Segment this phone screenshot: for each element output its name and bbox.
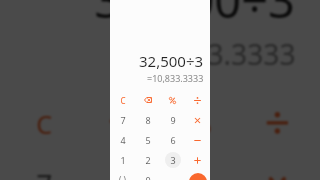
button[interactable]: Percent [160,90,185,110]
staticText: =10,833.3333 [119,34,298,71]
button[interactable]: Backspace [135,90,160,110]
button[interactable]: 3 [160,150,185,170]
staticText: =10,833.3333 [147,72,204,84]
staticText: 0 [145,174,151,180]
button[interactable]: Equals [185,174,210,180]
staticText: C [120,95,126,106]
staticText: 7 [35,165,54,180]
button[interactable]: Equals [189,173,207,180]
button[interactable]: 1 [110,150,135,170]
staticText: 9 [191,165,210,180]
button[interactable]: Divide [185,90,210,110]
button[interactable]: 7 [3,153,82,180]
button[interactable]: Backspace [82,90,160,153]
button[interactable]: Clear [110,90,135,110]
button[interactable]: 2 [135,150,160,170]
button[interactable]: 0 [135,174,160,180]
staticText: 9 [170,114,176,126]
button[interactable]: Multiply [238,153,317,180]
staticText: C [35,106,54,140]
button[interactable]: 9 [160,110,185,130]
button[interactable]: 8 [82,153,160,180]
button[interactable]: Multiply [185,110,210,130]
button[interactable]: 8 [135,110,160,130]
button[interactable]: Percent [160,90,238,153]
staticText: 1 [120,154,126,166]
button[interactable]: Clear [3,90,82,153]
staticText: 3 [170,154,176,166]
button[interactable]: 6 [160,130,185,150]
staticText: 32,500÷3 [94,0,298,30]
staticText: 5 [145,134,151,146]
button[interactable]: 4 [110,130,135,150]
button[interactable]: 9 [160,153,238,180]
button[interactable]: Minus [185,130,210,150]
staticText: 6 [170,134,176,146]
staticText: 7 [120,114,126,126]
staticText: 2 [145,154,151,166]
staticText: 32,500÷3 [139,51,204,71]
staticText: 8 [113,165,132,180]
button[interactable]: ( ) [110,174,135,180]
button[interactable]: 7 [110,110,135,130]
staticText: 4 [120,134,126,146]
button[interactable]: Divide [238,90,317,153]
button[interactable]: 5 [135,130,160,150]
button[interactable]: Plus [185,150,210,170]
staticText: 8 [145,114,151,126]
staticText: ( ) [119,174,126,180]
